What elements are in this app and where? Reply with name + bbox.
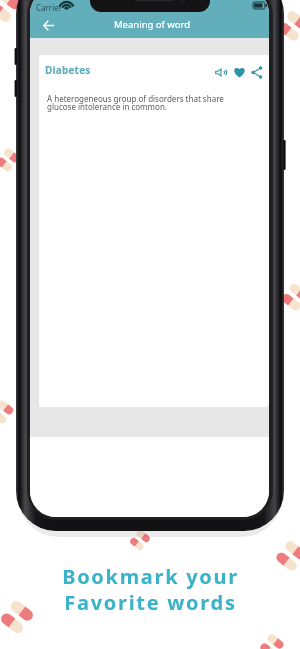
staticText: Carrier xyxy=(36,2,63,13)
button[interactable]: Share xyxy=(249,64,265,80)
staticText: Diabetes xyxy=(45,63,91,77)
staticText: A heterogeneous group of disorders that … xyxy=(47,93,252,112)
button[interactable]: Back xyxy=(39,16,57,34)
button[interactable]: Favorite xyxy=(231,64,247,80)
button[interactable]: Pronounce xyxy=(213,64,229,80)
staticText: Meaning of word xyxy=(114,18,191,31)
staticText: Bookmark your Favorite words xyxy=(62,563,239,616)
